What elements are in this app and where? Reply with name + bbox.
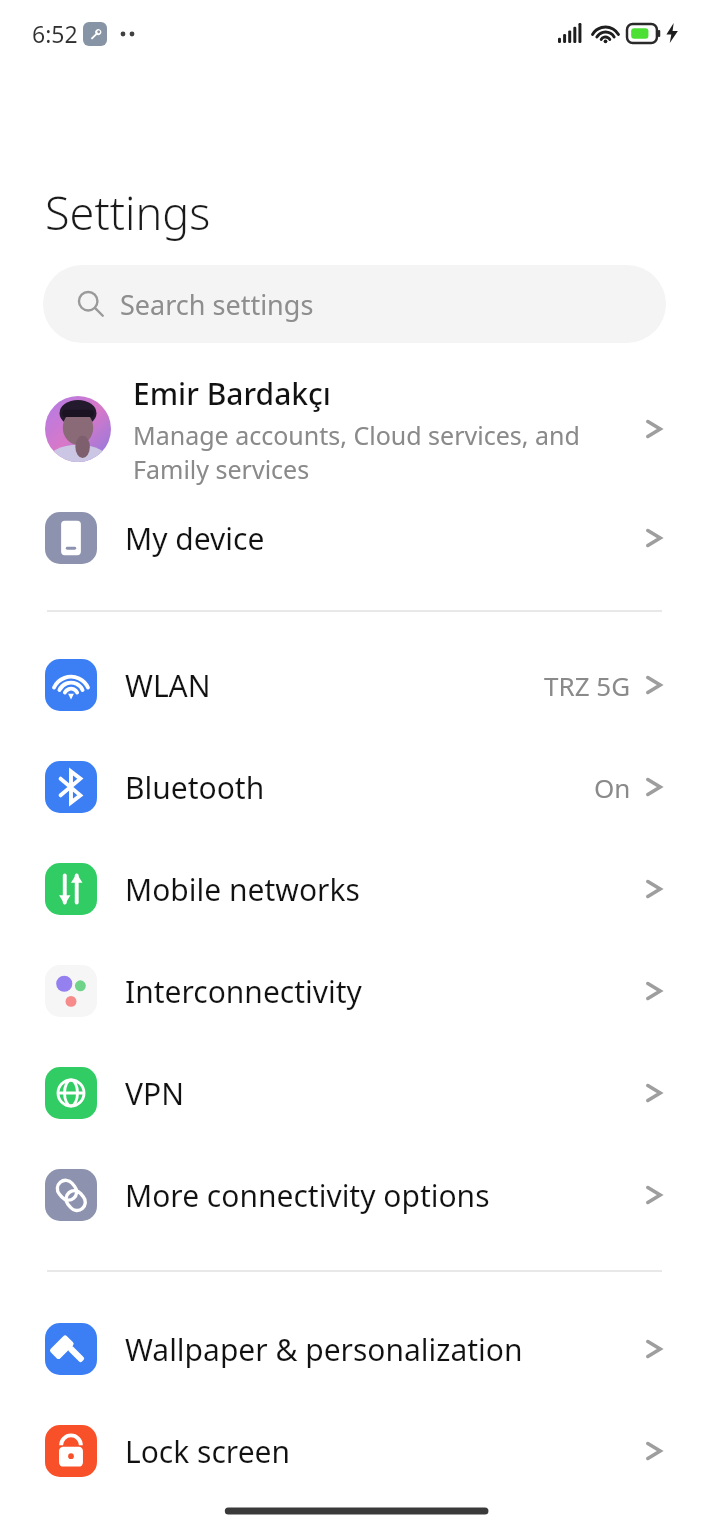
staticText: Settings xyxy=(45,182,211,243)
staticText: Mobile networks xyxy=(125,869,643,910)
button[interactable]: VPN xyxy=(0,1042,709,1144)
staticText: Manage accounts, Cloud services, and Fam… xyxy=(133,418,631,486)
button[interactable]: Lock screen xyxy=(0,1400,709,1502)
staticText: WLAN xyxy=(125,665,544,706)
button[interactable]: Mobile networks xyxy=(0,838,709,940)
staticText: My device xyxy=(125,518,643,559)
button[interactable]: Search settings xyxy=(43,265,666,343)
button[interactable]: Bluetooth xyxy=(0,736,709,838)
staticText: TRZ 5G xyxy=(544,668,631,703)
button[interactable]: WLAN xyxy=(0,634,709,736)
staticText: On xyxy=(594,770,631,805)
staticText: VPN xyxy=(125,1073,643,1114)
button[interactable]: Emir Bardakçı xyxy=(0,371,709,487)
button[interactable]: More connectivity options xyxy=(0,1144,709,1246)
button[interactable]: My device xyxy=(0,487,709,589)
staticText: Emir Bardakçı xyxy=(133,373,331,414)
staticText: Search settings xyxy=(120,286,314,323)
staticText: Wallpaper & personalization xyxy=(125,1329,643,1370)
button[interactable]: Wallpaper & personalization xyxy=(0,1298,709,1400)
staticText: Bluetooth xyxy=(125,767,594,808)
staticText: 6:52 xyxy=(32,18,78,49)
staticText: Interconnectivity xyxy=(125,971,643,1012)
staticText: More connectivity options xyxy=(125,1175,643,1216)
staticText: Lock screen xyxy=(125,1431,643,1472)
button[interactable]: Interconnectivity xyxy=(0,940,709,1042)
